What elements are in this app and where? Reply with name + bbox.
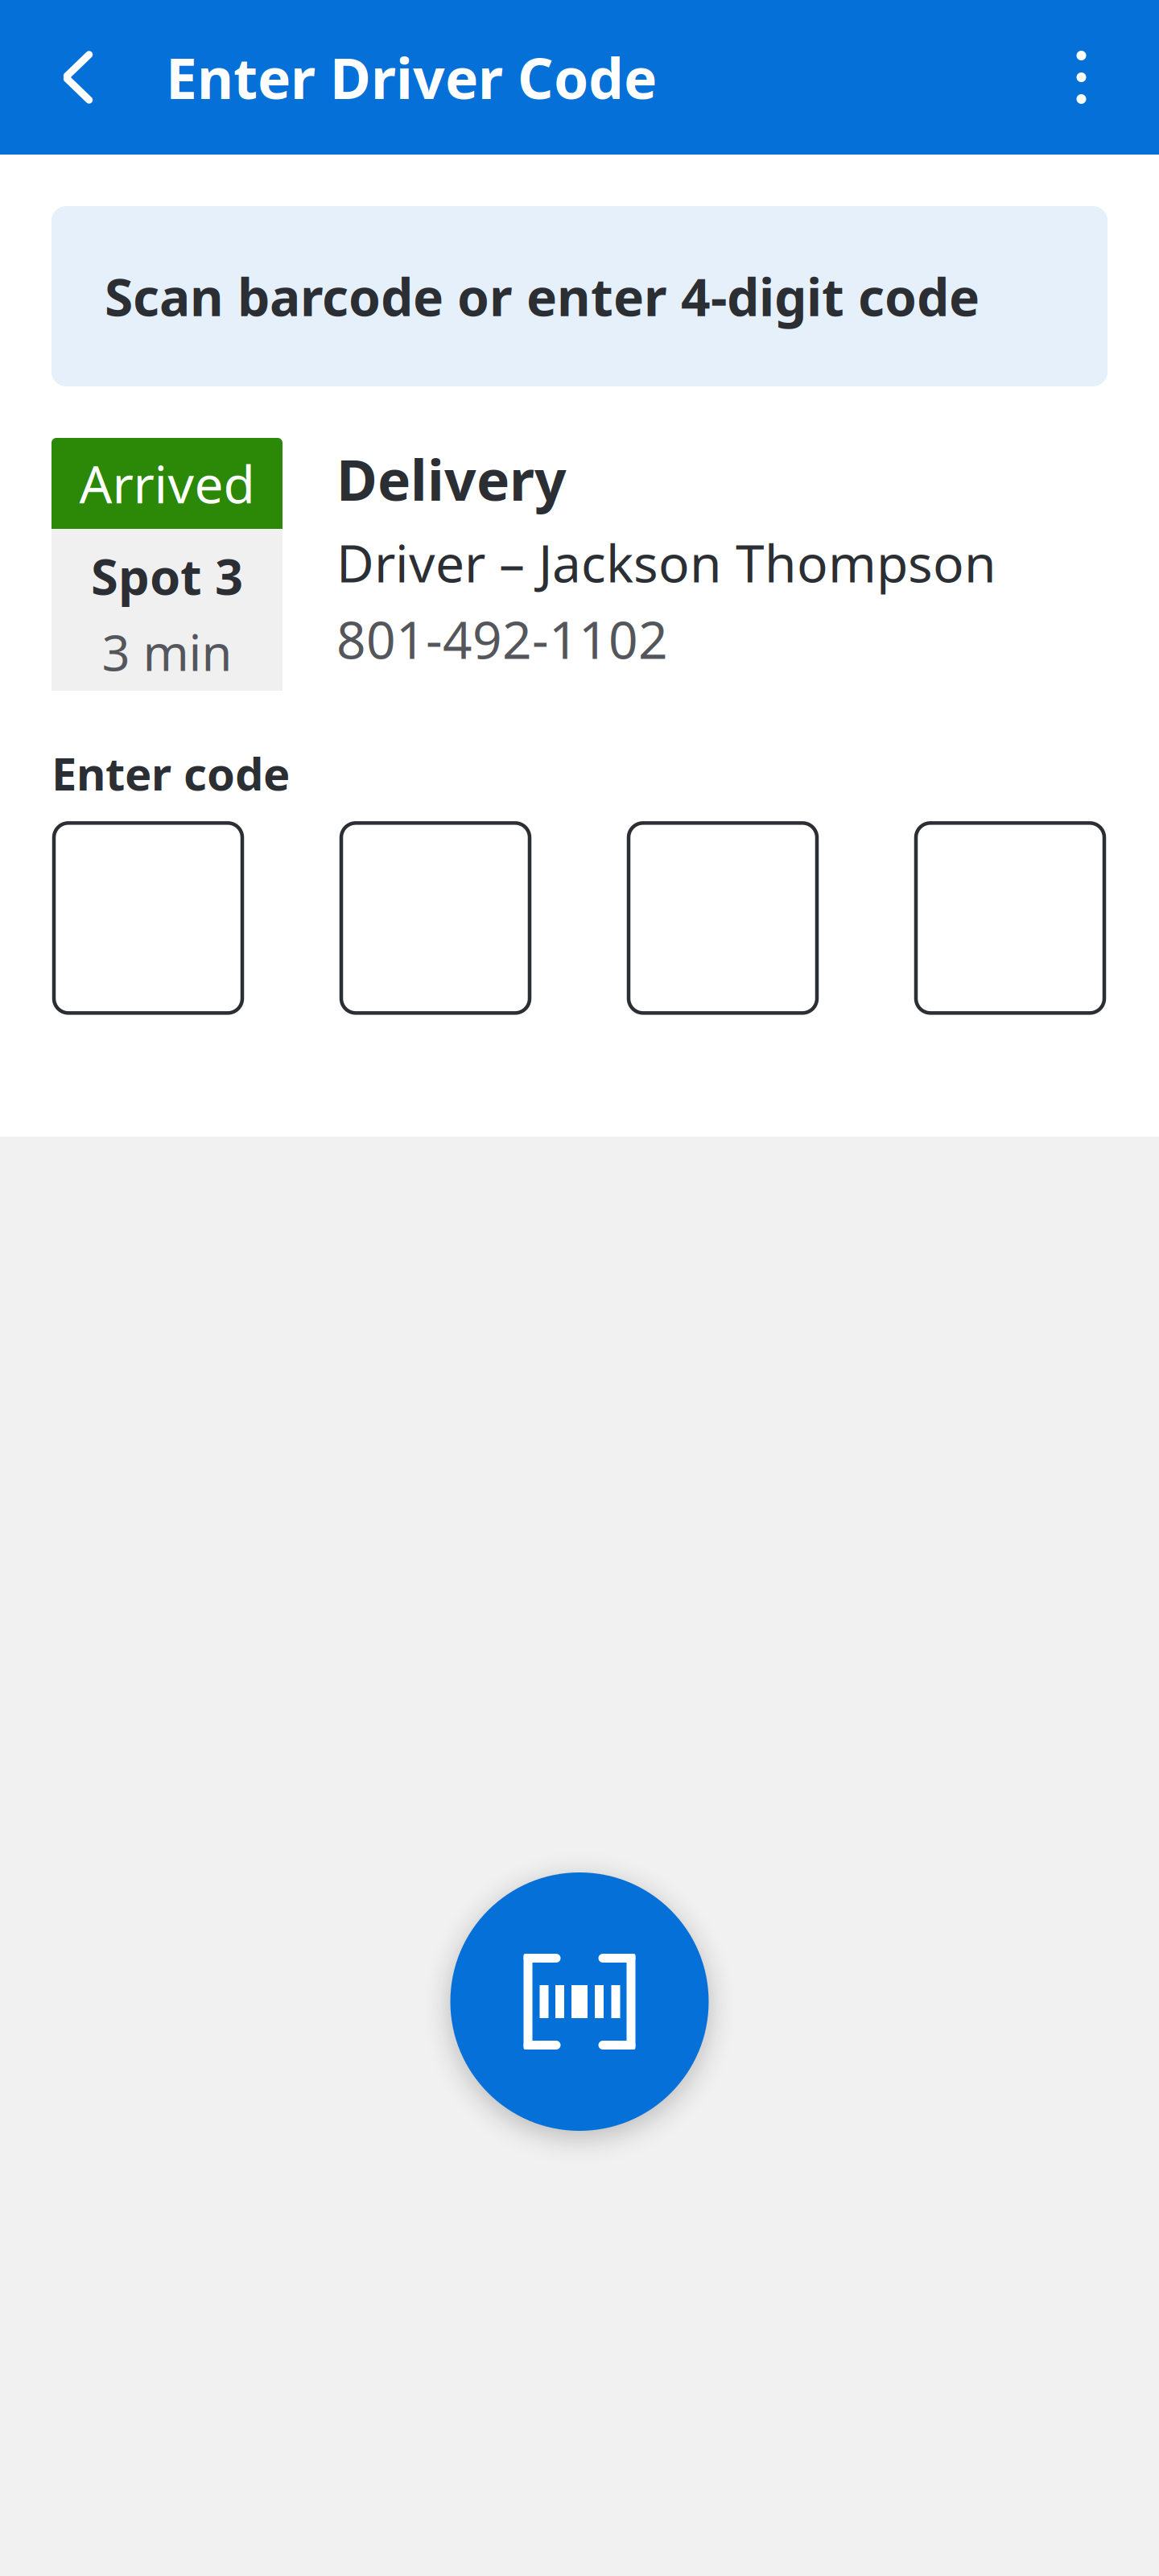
staticText: Delivery [336,442,567,516]
button[interactable]: Code digit [629,823,817,1013]
button[interactable]: Code digit [916,823,1104,1013]
button[interactable]: Scan barcode [450,1872,709,2131]
button[interactable]: Back [0,0,156,155]
staticText: Scan barcode or enter 4-digit code [105,262,980,330]
button[interactable]: Code digit [341,823,530,1013]
staticText: Enter code [52,743,290,803]
staticText: Spot 3 [91,543,243,609]
staticText: Enter Driver Code [166,40,657,114]
staticText: Arrived [79,449,255,518]
staticText: 3 min [102,619,232,685]
staticText: 801-492-1102 [336,605,668,673]
button[interactable]: Code digit [54,823,242,1013]
button[interactable]: More options [1004,0,1159,155]
staticText: Driver – Jackson Thompson [336,528,996,597]
